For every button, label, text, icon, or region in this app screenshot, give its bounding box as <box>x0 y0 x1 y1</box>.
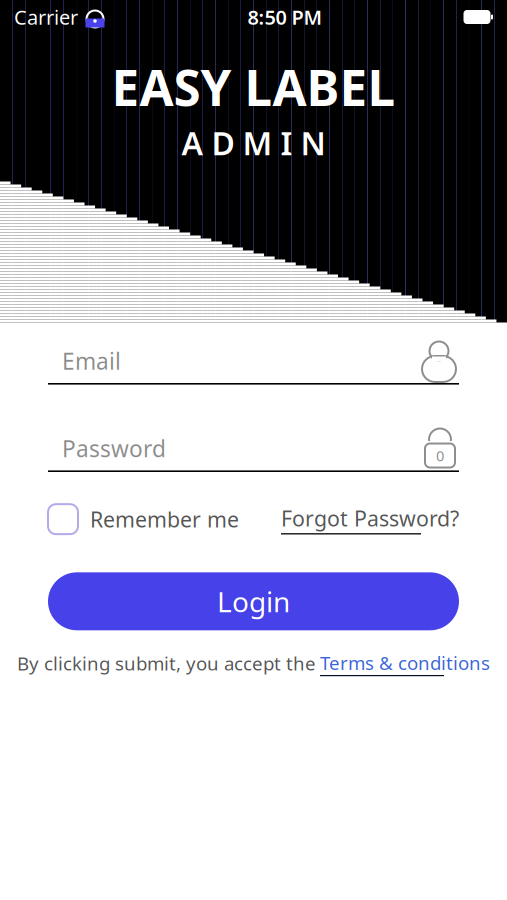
staticText: 8:50 PM <box>247 4 322 30</box>
staticText: Forgot Password? <box>281 504 459 532</box>
staticText: Terms & conditions <box>320 650 490 675</box>
staticText: Remember me <box>90 505 239 533</box>
staticText: Login <box>217 583 290 620</box>
staticText: 0 <box>436 446 444 465</box>
staticText: Password <box>62 433 166 463</box>
staticText: EASY LABEL <box>111 54 395 119</box>
button[interactable]: Forgot Password? <box>281 504 459 534</box>
button[interactable]: Terms & conditions <box>320 650 490 676</box>
staticText: A D M I N <box>181 121 325 164</box>
staticText: Email <box>62 346 121 376</box>
button[interactable]: Login <box>48 572 459 630</box>
button[interactable]: Remember me <box>48 504 239 534</box>
staticText: By clicking submit, you accept the <box>17 651 316 676</box>
staticText: Carrier <box>14 4 78 30</box>
